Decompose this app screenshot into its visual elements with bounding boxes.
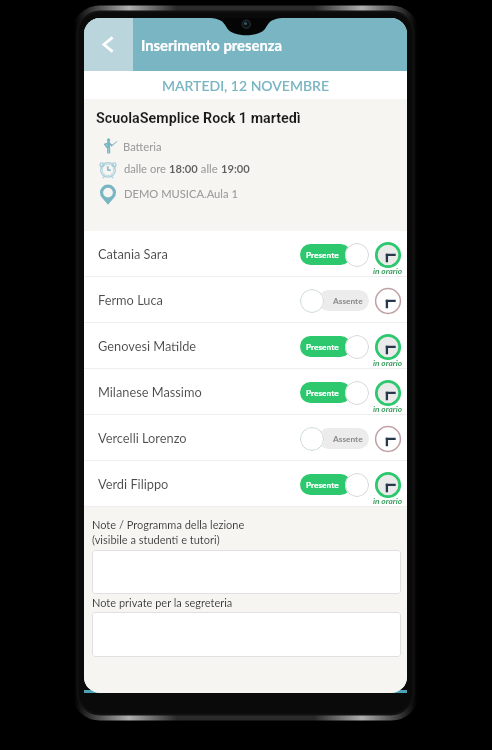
button[interactable]: Fermo Luca — [84, 277, 407, 323]
staticText: (visibile a studenti e tutori) — [92, 533, 220, 546]
staticText: Catania Sara — [98, 246, 168, 261]
button[interactable]: Presente — [300, 334, 369, 359]
button[interactable]: Milanese Massimo — [84, 369, 407, 415]
staticText: MARTEDI, 12 NOVEMBRE — [162, 77, 329, 94]
staticText: Note private per la segreteria — [92, 596, 233, 609]
staticText: Milanese Massimo — [98, 384, 202, 399]
staticText: in orario — [373, 266, 403, 276]
button[interactable]: Stato orario — [374, 333, 402, 361]
staticText: Note / Programma della lezione — [92, 518, 245, 531]
button[interactable]: Genovesi Matilde — [84, 323, 407, 369]
button[interactable]: Stato orario — [374, 471, 402, 499]
staticText: dalle ore — [124, 162, 169, 175]
staticText: 18:00 — [169, 162, 198, 175]
button[interactable]: Back — [84, 18, 133, 71]
staticText: Presente — [306, 250, 339, 260]
staticText: Presente — [306, 388, 339, 398]
button[interactable]: Stato orario — [374, 241, 402, 269]
staticText: Assente — [333, 296, 363, 306]
staticText: Presente — [306, 342, 339, 352]
staticText: Assente — [333, 434, 363, 444]
staticText: Presente — [306, 480, 339, 490]
button[interactable] — [92, 550, 401, 594]
button[interactable]: Stato orario — [374, 425, 402, 453]
staticText: in orario — [373, 358, 403, 368]
staticText: ScuolaSemplice Rock 1 martedì — [96, 110, 301, 127]
button[interactable]: Assente — [300, 426, 369, 451]
button[interactable]: Presente — [300, 380, 369, 405]
button[interactable]: Presente — [300, 242, 369, 267]
button[interactable]: Vercelli Lorenzo — [84, 415, 407, 461]
button[interactable]: Assente — [300, 288, 369, 313]
staticText: Fermo Luca — [98, 292, 163, 307]
button[interactable]: Presente — [300, 472, 369, 497]
staticText: 19:00 — [221, 162, 250, 175]
button[interactable]: Stato orario — [374, 287, 402, 315]
staticText: in orario — [373, 404, 403, 414]
staticText: Verdi Filippo — [98, 476, 169, 491]
staticText: DEMO MUSICA.Aula 1 — [124, 187, 238, 200]
staticText: Genovesi Matilde — [98, 338, 197, 353]
staticText: Batteria — [123, 140, 162, 153]
staticText: alle — [198, 162, 221, 175]
staticText: in orario — [373, 496, 403, 506]
button[interactable] — [92, 612, 401, 657]
button[interactable]: Stato orario — [374, 379, 402, 407]
staticText: Vercelli Lorenzo — [98, 430, 187, 445]
button[interactable]: Verdi Filippo — [84, 461, 407, 507]
staticText: Inserimento presenza — [141, 36, 283, 54]
button[interactable]: Catania Sara — [84, 231, 407, 277]
